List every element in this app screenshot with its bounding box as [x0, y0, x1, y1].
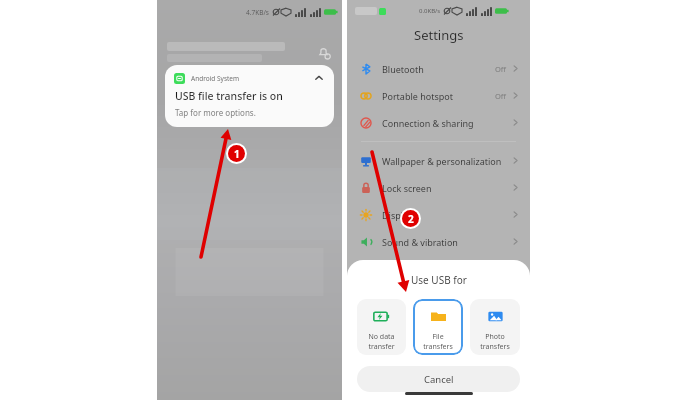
staticText: 0.0KB/s — [419, 7, 441, 15]
staticText: Off — [495, 64, 507, 74]
button[interactable]: File — [413, 299, 463, 355]
staticText: Off — [495, 91, 507, 101]
staticText: Photo — [485, 332, 505, 342]
staticText: Tap for more options. — [175, 107, 256, 118]
button[interactable]: Connection & sharing — [347, 109, 530, 136]
staticText: 1 — [234, 147, 240, 161]
button[interactable]: Photo — [470, 299, 520, 355]
button[interactable]: Notification settings — [314, 43, 332, 61]
staticText: transfer — [368, 342, 395, 352]
staticText: Portable hotspot — [382, 90, 453, 102]
staticText: Connection & sharing — [382, 117, 474, 129]
staticText: Wallpaper & personalization — [382, 155, 502, 167]
button[interactable]: Wallpaper & personalization — [347, 147, 530, 174]
button[interactable]: Lock screen — [347, 174, 530, 201]
staticText: 2 — [408, 212, 414, 226]
button[interactable]: Android System — [165, 65, 334, 127]
staticText: Lock screen — [382, 182, 432, 194]
staticText: Sound & vibration — [382, 236, 458, 248]
staticText: Use USB for — [411, 273, 467, 287]
staticText: transfers — [480, 342, 510, 352]
staticText: Cancel — [424, 373, 454, 386]
staticText: 4.7KB/s — [246, 8, 269, 17]
button[interactable]: Display — [347, 201, 530, 228]
button[interactable]: Bluetooth — [347, 55, 530, 82]
staticText: File — [432, 332, 444, 342]
button[interactable]: No data — [357, 299, 406, 355]
button[interactable]: Sound & vibration — [347, 228, 530, 255]
button[interactable]: Collapse notification — [313, 72, 325, 84]
staticText: Settings — [414, 26, 464, 44]
staticText: Android System — [191, 74, 240, 83]
staticText: Bluetooth — [382, 63, 424, 75]
button[interactable]: Cancel — [357, 366, 520, 392]
staticText: transfers — [423, 342, 453, 352]
staticText: No data — [368, 332, 395, 342]
button[interactable]: Portable hotspot — [347, 82, 530, 109]
staticText: Display — [382, 209, 413, 221]
staticText: USB file transfer is on — [175, 89, 283, 103]
